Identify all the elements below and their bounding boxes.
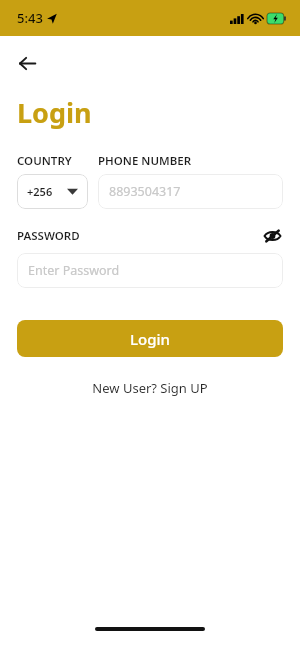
button[interactable]: Back [10, 46, 44, 80]
button[interactable]: Login [17, 320, 283, 357]
button[interactable]: Show password [261, 225, 283, 247]
staticText: PASSWORD [17, 228, 80, 244]
staticText: PHONE NUMBER [98, 153, 192, 169]
staticText: Login [17, 94, 92, 131]
staticText: Enter Password [28, 262, 120, 279]
staticText: New User? Sign UP [92, 379, 208, 397]
staticText: 8893504317 [109, 183, 181, 200]
staticText: +256 [27, 184, 53, 199]
staticText: Login [130, 329, 170, 349]
button[interactable]: Enter Password [17, 253, 283, 288]
button[interactable]: +256 [17, 174, 88, 209]
staticText: 5:43 [17, 9, 43, 27]
staticText: COUNTRY [17, 153, 98, 169]
button[interactable]: New User? Sign UP [82, 375, 218, 401]
button[interactable]: 8893504317 [98, 174, 283, 209]
